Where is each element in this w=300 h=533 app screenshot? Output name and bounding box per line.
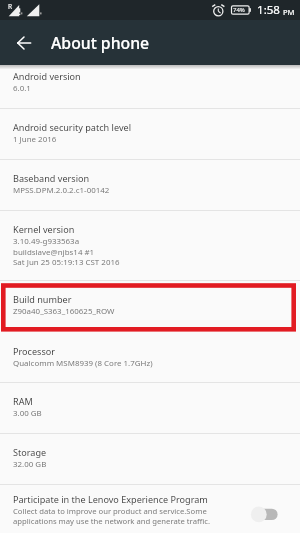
- staticText: Baseband version: [13, 172, 90, 184]
- button[interactable]: RAM: [0, 383, 300, 433]
- staticText: Processor: [13, 345, 56, 357]
- staticText: Storage: [13, 446, 47, 458]
- staticText: 74%: [233, 6, 245, 14]
- staticText: RAM: [13, 395, 33, 407]
- staticText: Build number: [13, 293, 72, 305]
- staticText: 3.10.49-g933563a buildslave@njbs14 #1 Sa…: [13, 236, 120, 267]
- staticText: Participate in the Lenovo Experience Pro…: [13, 493, 208, 505]
- button[interactable]: Navigate up: [6, 25, 42, 61]
- staticText: 1 June 2016: [13, 134, 57, 145]
- staticText: MPSS.DPM.2.0.2.c1-00142: [13, 185, 110, 196]
- button[interactable]: Kernel version: [0, 211, 300, 280]
- button[interactable]: Participate in the Lenovo Experience Pro…: [0, 485, 300, 533]
- staticText: 6.0.1: [13, 83, 31, 94]
- staticText: 32.00 GB: [13, 459, 47, 470]
- button[interactable]: Processor: [0, 333, 300, 382]
- staticText: R: [8, 2, 13, 11]
- staticText: Collect data to improve our product and …: [13, 506, 210, 526]
- staticText: Qualcomm MSM8939 (8 Core 1.7GHz): [13, 358, 153, 369]
- staticText: PM: [283, 7, 295, 17]
- staticText: Kernel version: [13, 223, 75, 235]
- button[interactable]: Android version: [0, 65, 300, 108]
- staticText: Android security patch level: [13, 121, 131, 133]
- button[interactable]: Storage: [0, 434, 300, 484]
- staticText: 3.00 GB: [13, 408, 42, 419]
- button[interactable]: Build number: [0, 281, 300, 333]
- button[interactable]: Baseband version: [0, 160, 300, 210]
- staticText: 1:58: [257, 2, 281, 18]
- staticText: Android version: [13, 70, 81, 82]
- button[interactable]: Toggle Lenovo Experience Program: [251, 485, 300, 533]
- staticText: About phone: [51, 32, 150, 54]
- button[interactable]: Android security patch level: [0, 109, 300, 159]
- staticText: Z90a40_S363_160625_ROW: [13, 306, 115, 317]
